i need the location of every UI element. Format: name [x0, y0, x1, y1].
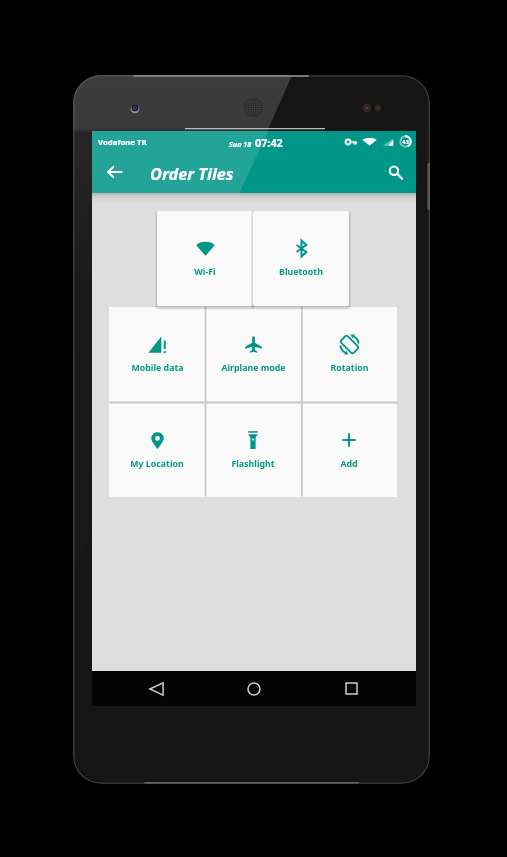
button[interactable]: Home	[236, 671, 272, 706]
staticText: Sun 18	[229, 139, 252, 149]
staticText: Add	[340, 458, 358, 470]
staticText: Bluetooth	[279, 266, 323, 278]
staticText: My Location	[130, 458, 184, 470]
staticText: Vodafone TR	[98, 137, 147, 148]
staticText: 43	[402, 138, 409, 146]
staticText: Airplane mode	[221, 362, 286, 374]
button[interactable]: Bluetooth	[253, 211, 349, 306]
staticText: Order Tiles	[150, 163, 234, 185]
button[interactable]: Recents	[333, 671, 369, 706]
button[interactable]: My Location	[109, 403, 205, 497]
button[interactable]: Search	[380, 157, 410, 187]
staticText: Wi-Fi	[194, 266, 216, 278]
staticText: Mobile data	[131, 362, 184, 374]
button[interactable]: Airplane mode	[205, 307, 301, 403]
staticText: 07:42	[255, 135, 283, 150]
button[interactable]: Wi-Fi	[157, 211, 253, 306]
button[interactable]: Rotation	[301, 307, 397, 403]
button[interactable]: Back	[138, 671, 174, 706]
staticText: Rotation	[330, 362, 369, 374]
button[interactable]: Back	[99, 157, 129, 187]
staticText: Flashlight	[231, 458, 275, 470]
button[interactable]: Mobile data	[109, 307, 205, 403]
button[interactable]: Flashlight	[205, 403, 301, 497]
button[interactable]: Add	[301, 403, 397, 497]
